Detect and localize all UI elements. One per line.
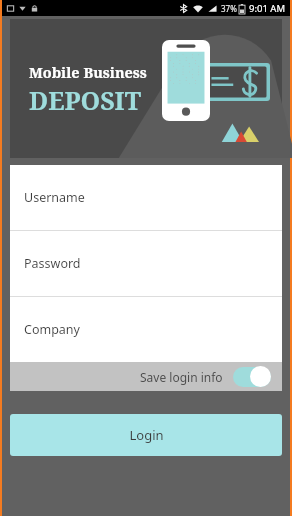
staticText: 37% <box>221 3 237 14</box>
staticText: Mobile Business <box>29 62 147 82</box>
button[interactable]: Password <box>10 231 282 296</box>
staticText: Save login info <box>140 369 223 385</box>
button[interactable]: Save login info <box>10 362 282 391</box>
button[interactable]: Username <box>10 165 282 230</box>
staticText: 9:01 AM <box>249 2 286 15</box>
button[interactable]: Company <box>10 297 282 362</box>
staticText: Username <box>24 189 85 206</box>
staticText: DEPOSIT <box>29 83 141 117</box>
staticText: Company <box>24 321 80 338</box>
staticText: Password <box>24 255 81 272</box>
button[interactable]: Login <box>10 414 282 456</box>
staticText: Login <box>129 426 164 444</box>
